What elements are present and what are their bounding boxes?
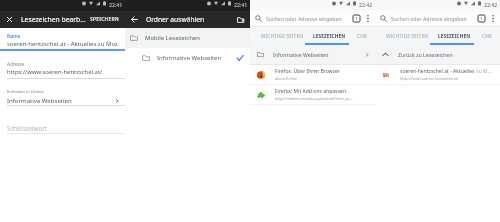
staticText: LESEZEICHEN — [313, 33, 346, 40]
staticText: Ordner auswählen — [146, 15, 205, 24]
staticText: Suchen oder Adresse eingeben — [391, 15, 467, 22]
staticText: WICHTIGE SEITEN — [386, 33, 428, 40]
staticText: CHRONIK — [357, 33, 370, 40]
staticText: Mobile Lesezeichen — [145, 34, 200, 42]
staticText: Informative Webseiten — [157, 54, 222, 62]
button[interactable]: Informative Webseiten — [250, 45, 375, 64]
staticText: 1 — [355, 16, 358, 22]
other: Suchen — [255, 15, 262, 22]
button[interactable]: LESEZEICHEN — [308, 27, 352, 45]
staticText: 22:41 — [234, 1, 248, 8]
button[interactable]: Tabs — [476, 11, 487, 26]
staticText: https://addons.mozilla.org/android/?utm_… — [275, 96, 353, 101]
staticText: 22:41 — [109, 1, 123, 8]
button[interactable]: CHRONIK — [477, 27, 500, 45]
staticText: SPEICHERN — [90, 16, 119, 23]
button[interactable]: Schließen — [0, 11, 19, 28]
button[interactable]: Informative Webseiten — [0, 95, 125, 106]
staticText: Informative Webseiten — [7, 97, 72, 105]
button[interactable]: Tabs — [351, 11, 362, 26]
staticText: soeren-hentzschel.at - Aktuelles zu Moz — [7, 40, 118, 48]
staticText: CHRONIK — [482, 33, 495, 40]
button[interactable]: CHRONIK — [352, 27, 375, 45]
staticText: Zurück zu Lesezeichen — [398, 51, 453, 58]
button[interactable]: Informative Webseiten — [125, 48, 250, 68]
button[interactable]: Menü — [487, 11, 498, 26]
staticText: WICHTIGE SEITEN — [261, 33, 303, 40]
staticText: LESEZEICHEN — [438, 33, 471, 40]
button[interactable]: Zurück — [125, 11, 144, 28]
button[interactable]: LESEZEICHEN — [433, 27, 477, 45]
staticText: https://www.soeren-hentzschel.at/ — [400, 76, 459, 81]
other: Suchen — [380, 15, 387, 22]
button[interactable]: Menü — [362, 11, 373, 26]
staticText: 22:42 — [484, 1, 498, 8]
staticText: Name — [7, 33, 21, 39]
staticText: Lesezeichen bearb… — [21, 15, 86, 24]
button[interactable]: WICHTIGE SEITEN — [250, 27, 308, 45]
staticText: Schlüsselwort — [7, 124, 48, 132]
staticText: https://www.soeren-hentzschel.at/ — [7, 68, 103, 76]
staticText: Informative Webseiten — [273, 51, 329, 58]
button[interactable]: SPEICHERN — [86, 12, 123, 27]
button[interactable]: Firefox: Mit Add-ons anpassen — [250, 85, 375, 104]
button[interactable]: Neuer Ordner — [234, 11, 248, 28]
staticText: Firefox: Mit Add-ons anpassen — [275, 88, 346, 95]
button[interactable]: Firefox: Über Ihren Browser — [250, 65, 375, 84]
button[interactable]: soeren-hentzschel.at - Aktuelles — [375, 65, 500, 84]
staticText: soeren-hentzschel.at - Aktuelles — [400, 68, 475, 75]
staticText: Firefox: Über Ihren Browser — [275, 68, 340, 75]
staticText: zu M… — [475, 68, 492, 75]
staticText: Adresse — [7, 61, 25, 67]
staticText: 22:42 — [359, 1, 373, 8]
staticText: about:firefox — [275, 76, 297, 81]
staticText: Enthalten in Ordner — [7, 89, 45, 94]
button[interactable]: Zurück zu Lesezeichen — [375, 45, 500, 64]
button[interactable]: Mobile Lesezeichen — [125, 28, 250, 48]
staticText: Suchen oder Adresse eingeben — [266, 15, 342, 22]
staticText: 1 — [480, 16, 483, 22]
button[interactable]: WICHTIGE SEITEN — [375, 27, 433, 45]
